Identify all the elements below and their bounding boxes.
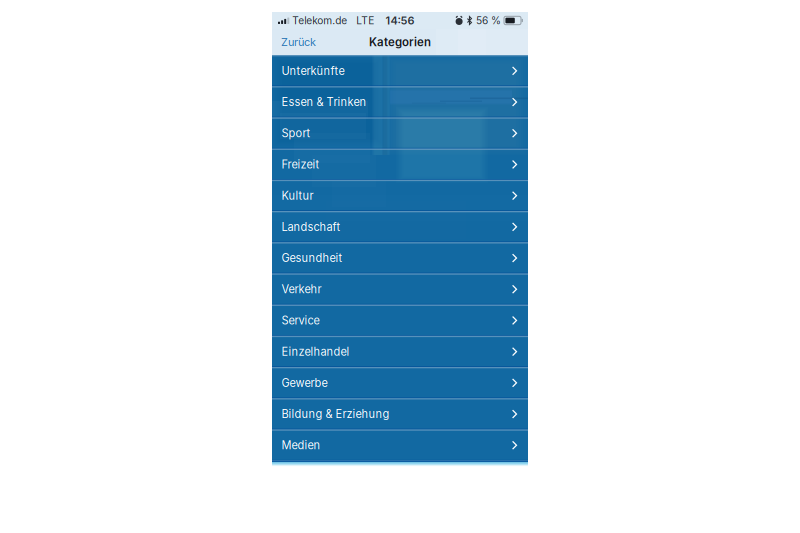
button[interactable]: Service bbox=[272, 305, 528, 336]
staticText: LTE bbox=[347, 14, 374, 27]
staticText: 14:56 bbox=[385, 14, 414, 27]
button[interactable]: Gewerbe bbox=[272, 367, 528, 398]
button[interactable]: Landschaft bbox=[272, 211, 528, 242]
button[interactable]: Essen & Trinken bbox=[272, 86, 528, 117]
button[interactable]: Sport bbox=[272, 117, 528, 149]
button[interactable]: Freizeit bbox=[272, 149, 528, 180]
staticText: Kultur bbox=[281, 189, 313, 202]
button[interactable]: Bildung & Erziehung bbox=[272, 398, 528, 429]
button[interactable]: Verkehr bbox=[272, 273, 528, 305]
staticText: 56 % bbox=[476, 14, 501, 27]
staticText: Bildung & Erziehung bbox=[281, 407, 389, 421]
staticText: Gewerbe bbox=[281, 376, 327, 390]
staticText: Medien bbox=[281, 439, 320, 452]
staticText: Zurück bbox=[281, 35, 316, 49]
button[interactable]: Kultur bbox=[272, 180, 528, 211]
staticText: Essen & Trinken bbox=[281, 95, 366, 109]
button[interactable]: Unterkünfte bbox=[272, 55, 528, 86]
button[interactable]: Zurück bbox=[272, 29, 325, 55]
button[interactable]: Medien bbox=[272, 429, 528, 461]
staticText: Unterkünfte bbox=[281, 64, 344, 78]
staticText: Freizeit bbox=[281, 158, 319, 171]
staticText: Einzelhandel bbox=[281, 345, 349, 358]
staticText: Service bbox=[281, 314, 319, 327]
staticText: Telekom.de bbox=[289, 14, 347, 27]
staticText: Landschaft bbox=[281, 220, 340, 234]
button[interactable]: Gesundheit bbox=[272, 242, 528, 273]
staticText: Sport bbox=[281, 127, 310, 140]
button[interactable]: Einzelhandel bbox=[272, 336, 528, 367]
staticText: Gesundheit bbox=[281, 251, 342, 265]
staticText: Kategorien bbox=[369, 35, 431, 49]
staticText: Verkehr bbox=[281, 283, 321, 296]
